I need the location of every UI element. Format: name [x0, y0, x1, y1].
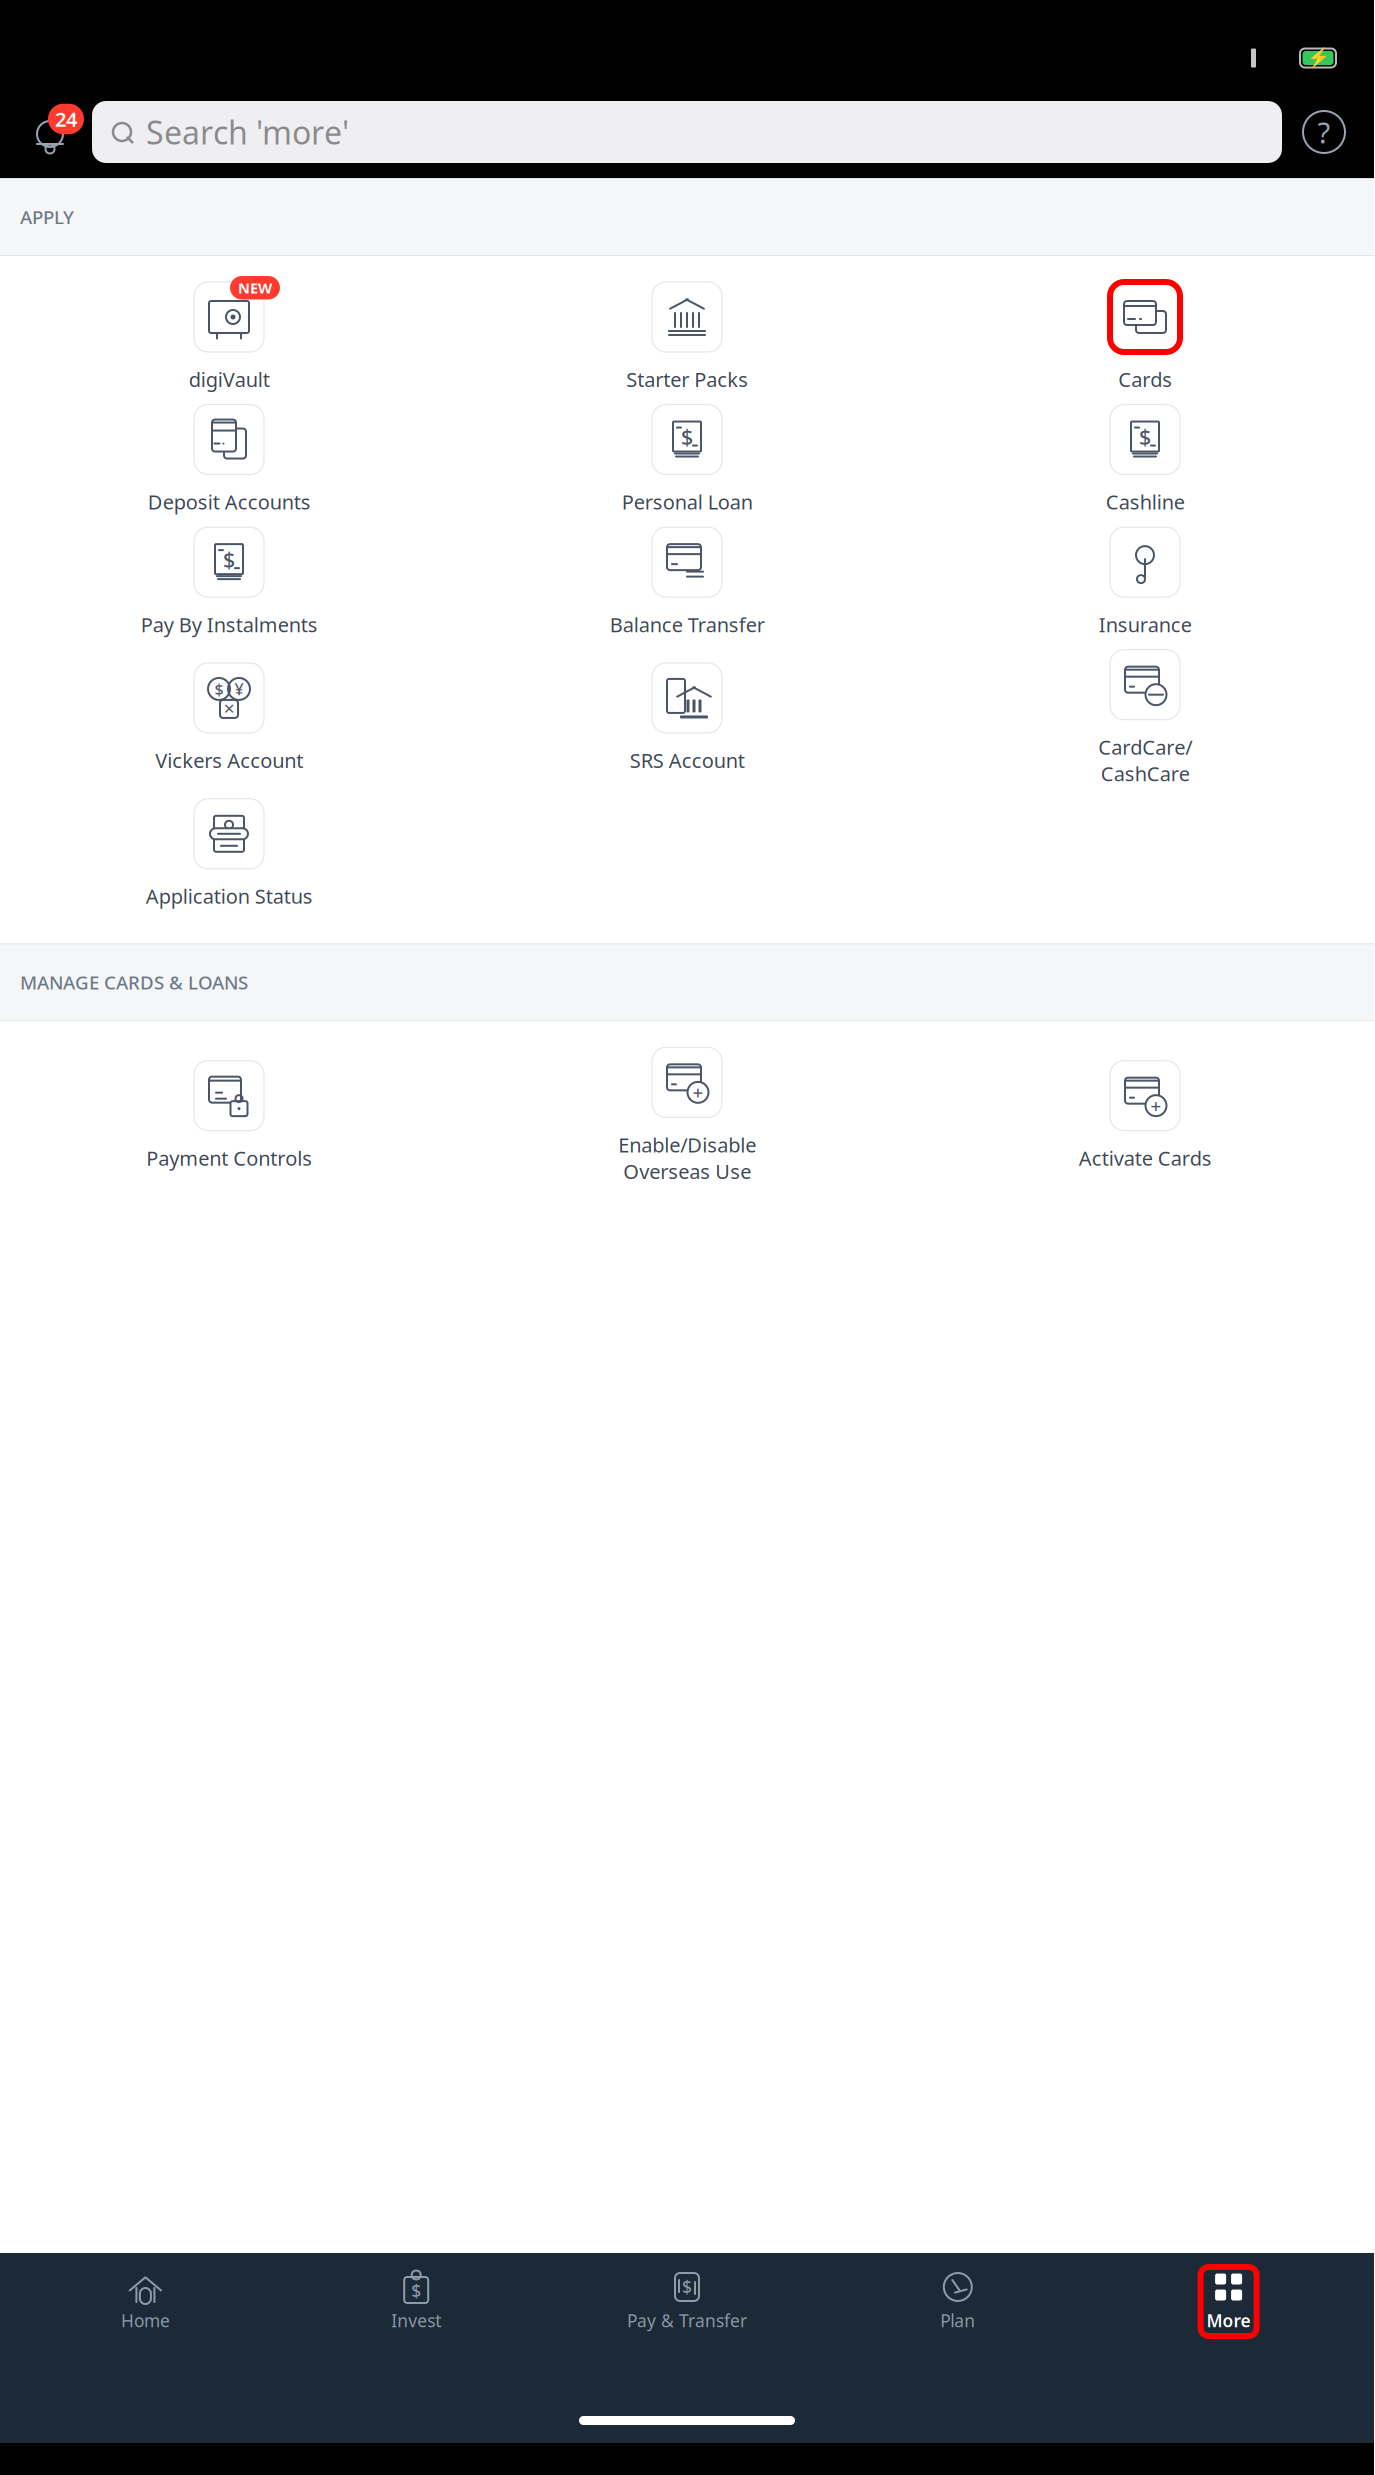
staticText: More [1207, 2309, 1251, 2332]
staticText: Insurance [1098, 611, 1191, 638]
button[interactable]: $ [458, 401, 916, 523]
staticText: MANAGE CARDS & LOANS [20, 970, 248, 995]
button[interactable]: $ [281, 2267, 552, 2336]
staticText: ✕ [223, 701, 235, 717]
staticText: + [1150, 1093, 1161, 1118]
button[interactable]: Deposit Accounts [0, 401, 458, 523]
staticText: Pay & Transfer [627, 2309, 747, 2332]
button[interactable]: Application Status [0, 795, 458, 917]
staticText: CardCare/ CashCare [1098, 734, 1192, 787]
staticText: Balance Transfer [609, 611, 764, 638]
staticText: $ [682, 2275, 692, 2298]
staticText: Deposit Accounts [147, 489, 310, 515]
staticText: SRS Account [629, 747, 744, 774]
staticText: ? [1317, 112, 1330, 151]
staticText: Activate Cards [1078, 1145, 1211, 1171]
button[interactable]: Cards [916, 278, 1374, 401]
button[interactable]: Starter Packs [458, 278, 916, 401]
button[interactable]: Home [10, 2267, 281, 2336]
button[interactable]: + [458, 1043, 916, 1192]
button[interactable]: Plan [822, 2267, 1093, 2336]
button[interactable]: Help [1296, 104, 1352, 160]
staticText: $ [223, 545, 235, 573]
staticText: Plan [940, 2309, 975, 2332]
button[interactable]: SRS Account [458, 659, 916, 782]
staticText: Enable/Disable Overseas Use [618, 1131, 756, 1184]
staticText: ⚡ [1306, 47, 1329, 69]
button[interactable]: Search 'more' [92, 101, 1282, 163]
button[interactable]: $ [916, 401, 1374, 523]
button[interactable]: $ [0, 659, 458, 782]
button[interactable]: NEW [0, 278, 458, 401]
staticText: 24 [55, 106, 77, 132]
button[interactable]: Insurance [916, 523, 1374, 646]
staticText: Cards [1118, 366, 1172, 393]
staticText: + [692, 1080, 703, 1105]
staticText: Personal Loan [621, 489, 752, 515]
button[interactable]: CardCare/ CashCare [916, 646, 1374, 795]
staticText: digiVault [188, 366, 269, 393]
staticText: ¥ [234, 678, 243, 699]
staticText: Search 'more' [146, 111, 349, 153]
button[interactable]: $ [0, 523, 458, 646]
staticText: $ [411, 2279, 421, 2302]
staticText: Starter Packs [626, 366, 748, 393]
button[interactable]: $ [552, 2267, 822, 2336]
staticText: Pay By Instalments [140, 611, 317, 638]
button[interactable]: + [916, 1057, 1374, 1179]
staticText: Cashline [1105, 489, 1184, 515]
button[interactable]: More [1093, 2267, 1364, 2336]
button[interactable]: Notifications, 24 unread [22, 104, 78, 160]
staticText: Payment Controls [146, 1145, 312, 1171]
staticText: Application Status [145, 883, 312, 909]
staticText: $ [681, 422, 693, 451]
staticText: $ [1139, 422, 1151, 451]
staticText: Vickers Account [155, 747, 303, 774]
staticText: APPLY [20, 205, 74, 229]
staticText: Home [121, 2309, 170, 2332]
staticText: $ [214, 678, 223, 699]
staticText: NEW [238, 278, 272, 297]
staticText: Invest [391, 2309, 441, 2332]
button[interactable]: Payment Controls [0, 1057, 458, 1179]
button[interactable]: Balance Transfer [458, 523, 916, 646]
